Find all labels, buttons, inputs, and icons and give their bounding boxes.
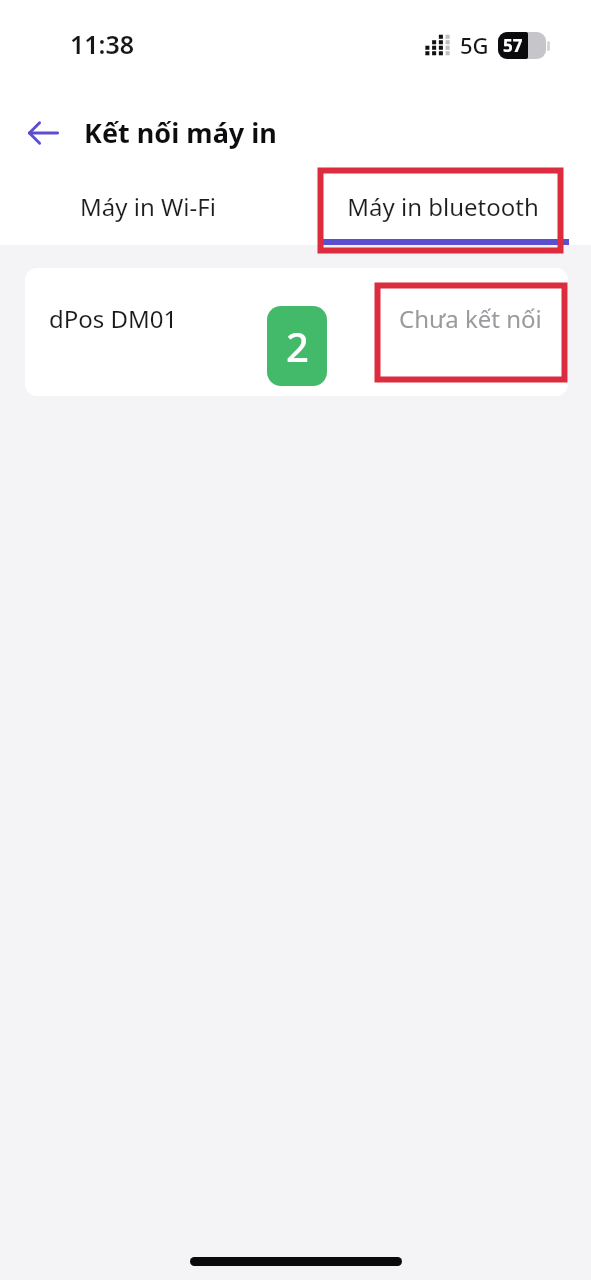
button[interactable]: dPos DM01 — [25, 268, 568, 396]
button[interactable]: Máy in Wi-Fi — [0, 168, 295, 245]
staticText: Kết nối máy in — [84, 114, 277, 151]
staticText: Chưa kết nối — [399, 302, 542, 335]
button[interactable]: Máy in bluetooth — [295, 168, 591, 245]
staticText: 2 — [286, 319, 309, 373]
staticText: Máy in bluetooth — [347, 190, 539, 223]
staticText: 11:38 — [70, 27, 135, 61]
staticText: dPos DM01 — [49, 302, 178, 335]
button[interactable]: Back — [16, 106, 70, 160]
staticText: Máy in Wi-Fi — [80, 190, 216, 223]
staticText: 5G — [460, 30, 489, 60]
staticText: 57 — [503, 34, 523, 57]
